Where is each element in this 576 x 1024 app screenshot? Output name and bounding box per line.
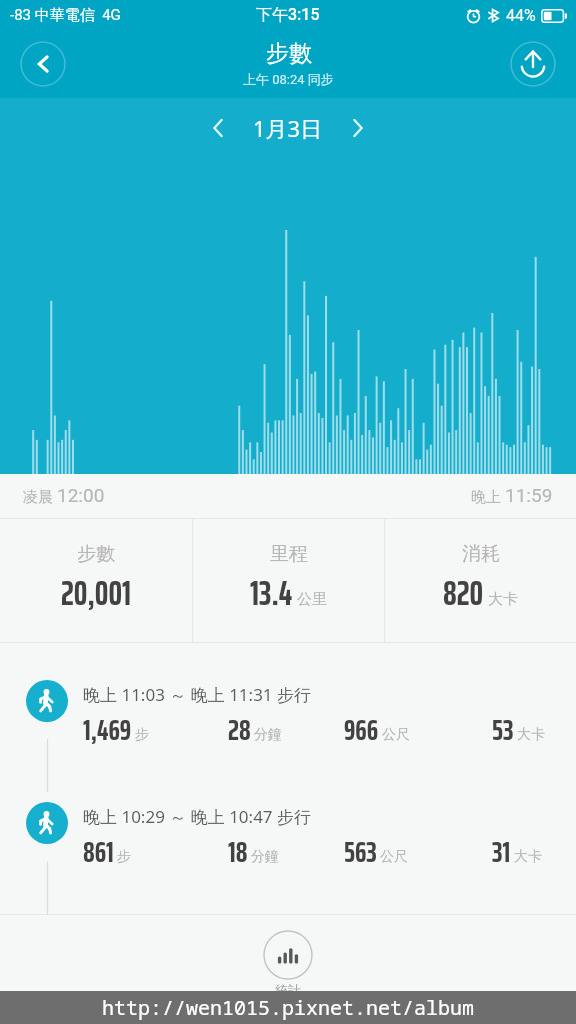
staticText: 公尺 (382, 726, 410, 744)
staticText: 20,001 (61, 566, 132, 620)
staticText: 晚上 (471, 486, 505, 506)
staticText: 分鐘 (254, 726, 282, 744)
staticText: 861 (83, 829, 114, 875)
staticText: 里程 (270, 542, 308, 566)
button[interactable]: Back (20, 41, 66, 87)
button[interactable]: Previous day (196, 106, 240, 150)
button[interactable]: 里程 (193, 519, 384, 642)
staticText: 563 (344, 829, 377, 875)
staticText: http://wen1015.pixnet.net/album (102, 994, 474, 1021)
staticText: 18 (228, 829, 248, 875)
staticText: 大卡 (517, 726, 545, 744)
staticText: 分鐘 (251, 848, 279, 866)
staticText: 大卡 (514, 848, 542, 866)
staticText: 公里 (297, 590, 327, 609)
button[interactable]: 步數 (0, 519, 192, 642)
staticText: 公尺 (380, 848, 408, 866)
staticText: 1,469 (83, 707, 132, 753)
staticText: 44% (506, 6, 536, 25)
staticText: 53 (492, 707, 514, 753)
button[interactable]: Next day (336, 106, 380, 150)
button[interactable]: 晚上 10:29 ～ 晚上 10:47 步行 (0, 801, 576, 891)
staticText: 晚上 11:03 ～ 晚上 11:31 步行 (83, 683, 312, 706)
staticText: 步數 (266, 39, 312, 68)
staticText: 1月3日 (253, 113, 323, 143)
button[interactable]: 統計 (263, 930, 313, 998)
staticText: 12:00 (57, 484, 105, 506)
staticText: 統計 (275, 982, 301, 998)
button[interactable]: 消耗 (385, 519, 576, 642)
button[interactable]: 晚上 11:03 ～ 晚上 11:31 步行 (0, 679, 576, 769)
staticText: 步數 (77, 542, 115, 566)
staticText: 晚上 10:29 ～ 晚上 10:47 步行 (83, 805, 312, 828)
button[interactable]: Share (510, 41, 556, 87)
staticText: 11:59 (505, 484, 553, 506)
staticText: 上午 08:24 同步 (243, 71, 334, 87)
staticText: 消耗 (462, 542, 500, 566)
staticText: 820 (443, 566, 484, 620)
staticText: 28 (228, 707, 251, 753)
staticText: 31 (492, 829, 511, 875)
staticText: 步 (117, 848, 131, 866)
staticText: 下午3:15 (256, 5, 320, 25)
staticText: 凌晨 (23, 486, 57, 506)
button[interactable]: 1月3日 (240, 113, 336, 143)
staticText: 步 (135, 726, 149, 744)
staticText: -83 中華電信 4G (10, 6, 121, 25)
staticText: 大卡 (488, 590, 518, 609)
staticText: 966 (344, 707, 379, 753)
staticText: 13.4 (250, 566, 293, 620)
